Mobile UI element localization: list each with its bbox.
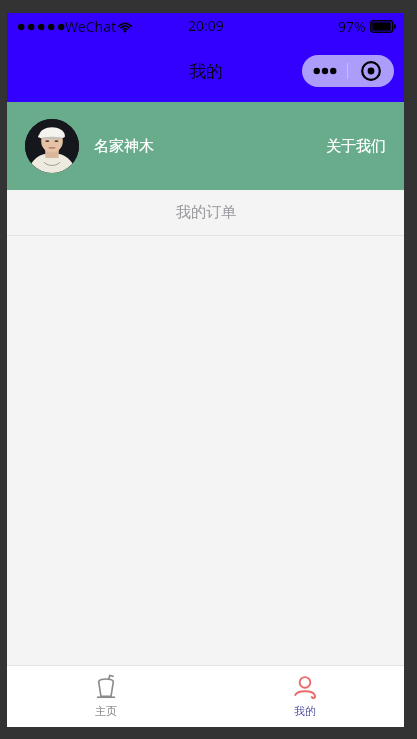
staticText: 主页 <box>95 704 117 718</box>
button[interactable]: 主页 <box>7 666 205 727</box>
staticText: 名家神木 <box>94 137 154 156</box>
staticText: 97% <box>338 17 366 36</box>
button[interactable]: 关于我们 <box>326 131 386 162</box>
button[interactable]: 我的订单 <box>7 190 404 235</box>
staticText: 我的订单 <box>176 203 236 222</box>
button[interactable]: 我的 <box>205 666 404 727</box>
staticText: 我的 <box>189 61 223 82</box>
staticText: WeChat <box>65 17 117 36</box>
staticText: 关于我们 <box>326 137 386 156</box>
staticText: 我的 <box>294 704 316 718</box>
staticText: 20:09 <box>188 16 224 35</box>
button[interactable]: More options and close mini program <box>302 55 394 87</box>
button[interactable]: 名家神木 <box>7 102 404 190</box>
